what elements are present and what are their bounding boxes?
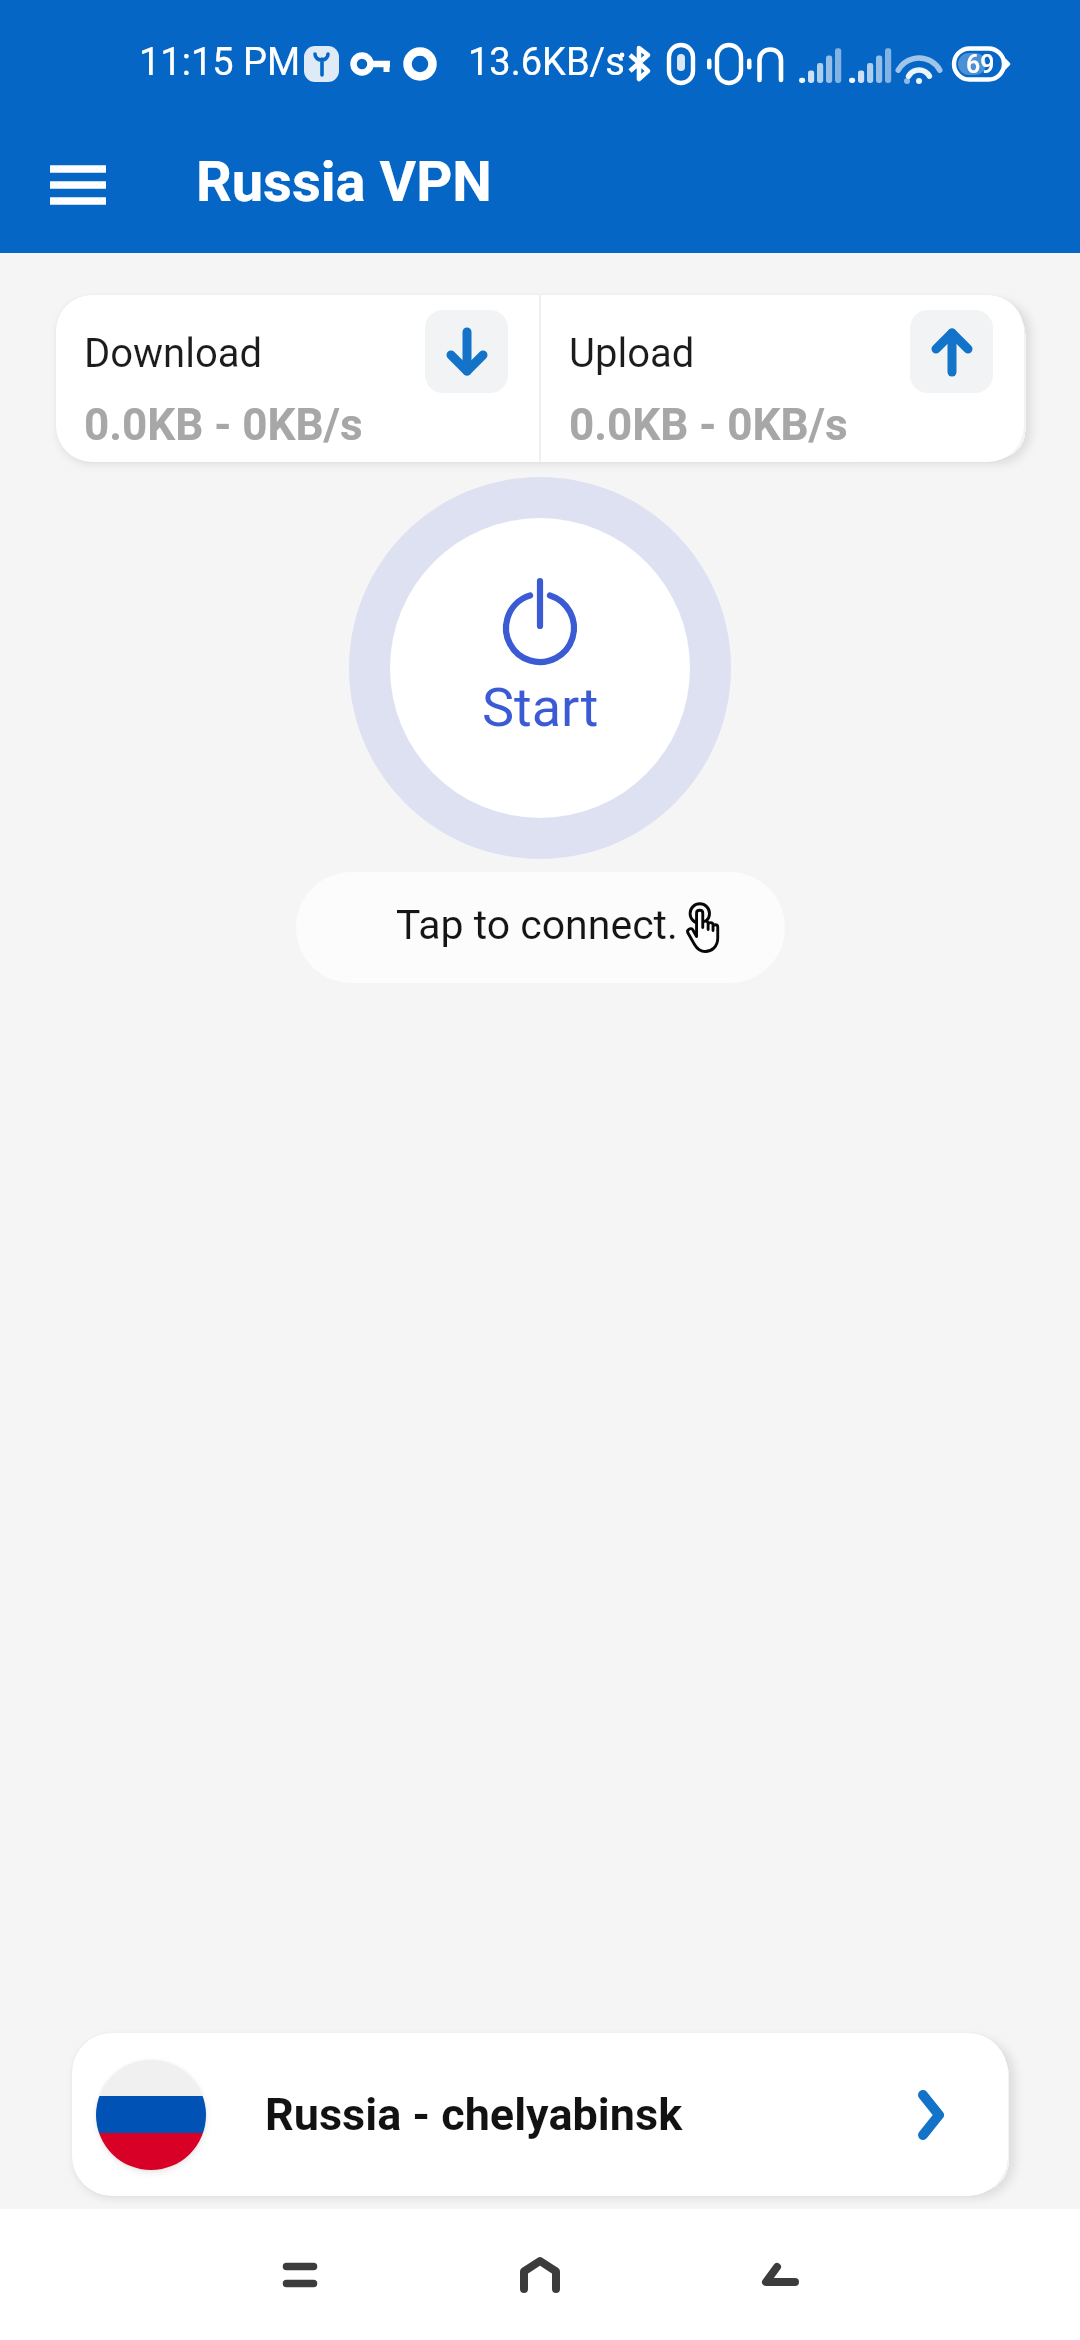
staticText: Russia - chelyabinsk <box>265 2088 683 2141</box>
button[interactable]: Start VPN connection <box>390 518 690 818</box>
staticText: Start <box>482 676 599 739</box>
button[interactable]: Recent apps <box>240 2209 360 2340</box>
button[interactable]: Russia - chelyabinsk <box>72 2033 1008 2196</box>
staticText: Upload <box>569 330 695 377</box>
button[interactable]: Home <box>480 2209 600 2340</box>
staticText: 69 <box>966 50 995 79</box>
staticText: 0.0KB - 0KB/s <box>569 399 848 451</box>
button[interactable]: Open navigation menu <box>28 136 128 236</box>
staticText: Russia VPN <box>196 149 492 215</box>
button[interactable]: Tap to connect. <box>296 872 785 983</box>
staticText: 13.6KB/s <box>468 40 625 85</box>
staticText: Download <box>84 330 263 377</box>
staticText: 11:15 PM <box>139 40 301 85</box>
button[interactable]: Back <box>720 2209 840 2340</box>
staticText: 0.0KB - 0KB/s <box>84 399 363 451</box>
staticText: Tap to connect. <box>396 901 678 949</box>
